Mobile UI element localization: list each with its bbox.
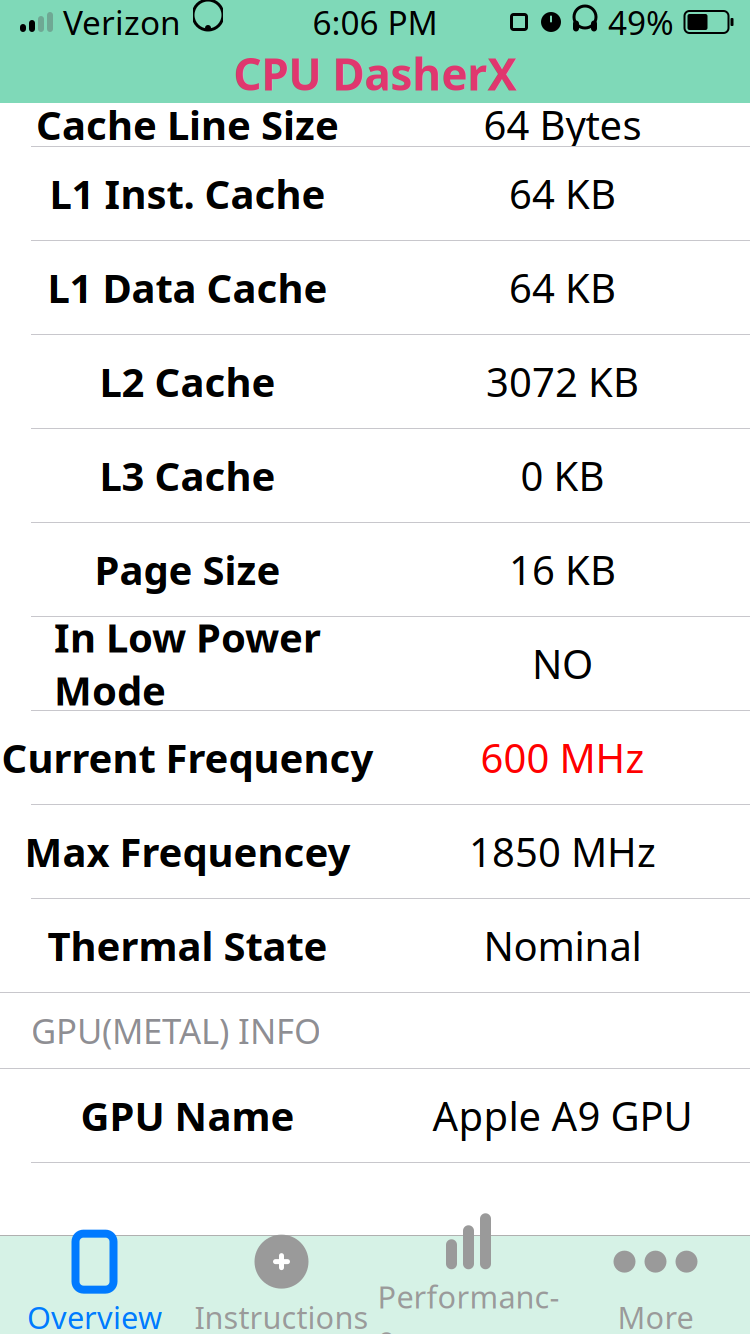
staticText: CPU DasherX: [233, 44, 516, 103]
button[interactable]: More: [562, 1235, 749, 1334]
button[interactable]: Page Size: [0, 523, 750, 616]
button[interactable]: Instructions: [188, 1235, 375, 1334]
staticText: 1850 MHz: [469, 825, 656, 878]
button[interactable]: In Low Power Mode: [0, 617, 750, 710]
staticText: L1 Inst. Cache: [49, 167, 325, 220]
button[interactable]: L3 Cache: [0, 429, 750, 522]
staticText: Thermal State: [47, 919, 327, 972]
staticText: Max Frequencey: [24, 825, 350, 878]
staticText: GPU Name: [80, 1089, 294, 1142]
staticText: Performance: [377, 1276, 559, 1334]
button[interactable]: Performance: [375, 1235, 562, 1334]
staticText: L2 Cache: [99, 355, 275, 408]
staticText: In Low Power Mode: [54, 610, 321, 717]
staticText: 0 KB: [520, 449, 604, 502]
staticText: 64 KB: [509, 261, 616, 314]
staticText: Page Size: [94, 543, 280, 596]
staticText: Instructions: [194, 1297, 368, 1334]
staticText: 600 MHz: [480, 731, 644, 784]
staticText: 3072 KB: [486, 355, 639, 408]
staticText: L1 Data Cache: [47, 261, 327, 314]
button[interactable]: L1 Inst. Cache: [0, 147, 750, 240]
staticText: 6:06 PM: [312, 0, 437, 44]
staticText: 64 Bytes: [483, 98, 641, 151]
staticText: NO: [532, 637, 593, 690]
staticText: L3 Cache: [99, 449, 275, 502]
button[interactable]: L1 Data Cache: [0, 241, 750, 334]
staticText: Apple A9 GPU: [432, 1089, 692, 1142]
staticText: GPU(METAL) INFO: [31, 1007, 321, 1053]
staticText: 64 KB: [509, 167, 616, 220]
staticText: Verizon: [63, 0, 181, 44]
button[interactable]: Current Frequency: [0, 711, 750, 804]
staticText: More: [617, 1297, 693, 1334]
button[interactable]: Overview: [1, 1235, 188, 1334]
staticText: Cache Line Size: [36, 98, 339, 151]
staticText: Nominal: [483, 919, 641, 972]
button[interactable]: L2 Cache: [0, 335, 750, 428]
button[interactable]: GPU Name: [0, 1069, 750, 1162]
button[interactable]: Max Frequencey: [0, 805, 750, 898]
staticText: 16 KB: [509, 543, 616, 596]
staticText: Current Frequency: [1, 731, 373, 784]
staticText: 49%: [608, 0, 674, 44]
button[interactable]: Thermal State: [0, 899, 750, 992]
staticText: Overview: [27, 1297, 162, 1334]
